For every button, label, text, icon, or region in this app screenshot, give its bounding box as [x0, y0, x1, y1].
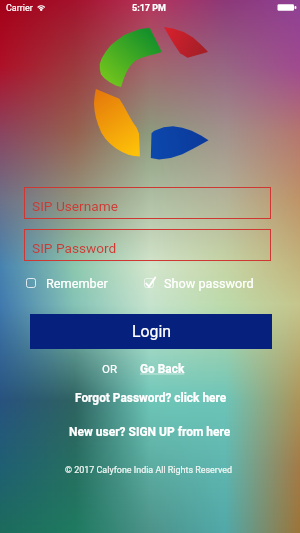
staticText: Carrier — [6, 3, 33, 14]
button[interactable] — [24, 229, 271, 261]
staticText: Show password — [164, 276, 254, 291]
staticText: Go Back — [140, 362, 185, 376]
button[interactable]: Remember — [21, 273, 108, 293]
button[interactable]: Go Back — [140, 362, 185, 376]
staticText: Remember — [46, 276, 108, 291]
button[interactable] — [24, 187, 271, 219]
staticText: Forgot Password? click here — [75, 391, 227, 405]
staticText: SIP Username — [32, 198, 118, 214]
staticText: New user? SIGN UP from here — [69, 425, 231, 439]
staticText: 5:17 PM — [132, 3, 166, 14]
button[interactable]: Login — [30, 314, 272, 349]
button[interactable]: Forgot Password? click here — [75, 391, 227, 405]
button[interactable]: Show password — [139, 273, 254, 293]
staticText: © 2017 Calyfone India All Rights Reserve… — [65, 465, 232, 475]
staticText: SIP Password — [32, 240, 117, 256]
staticText: Login — [132, 322, 171, 341]
button[interactable]: New user? SIGN UP from here — [69, 425, 231, 439]
staticText: OR — [102, 362, 117, 375]
